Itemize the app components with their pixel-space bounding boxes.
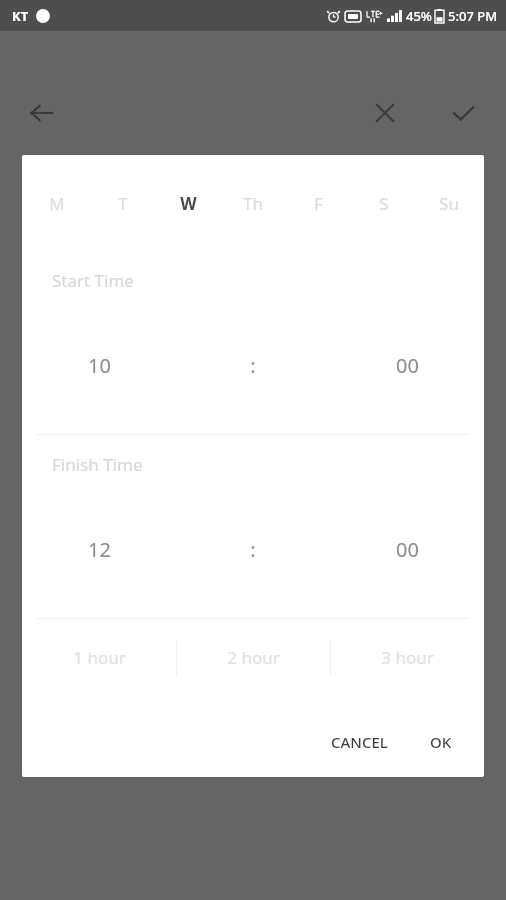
button[interactable]: 12 <box>22 521 176 577</box>
staticText: 10 <box>88 352 111 379</box>
staticText: T <box>118 192 128 215</box>
button[interactable]: Back <box>18 89 66 137</box>
staticText: Th <box>243 192 263 215</box>
button[interactable]: 3 hour <box>331 619 484 695</box>
button[interactable]: 1 hour <box>22 619 176 695</box>
staticText: : <box>250 352 256 379</box>
staticText: S <box>379 192 389 215</box>
button[interactable]: OK <box>416 718 466 766</box>
staticText: 00 <box>396 536 419 563</box>
staticText: 5:07 PM <box>448 7 498 25</box>
staticText: OK <box>430 732 452 752</box>
button[interactable]: S <box>354 177 414 229</box>
button[interactable]: 2 hour <box>177 619 330 695</box>
staticText: W <box>180 192 197 215</box>
button[interactable]: Close <box>361 89 409 137</box>
button[interactable]: Su <box>419 177 479 229</box>
button[interactable]: CANCEL <box>317 718 402 766</box>
staticText: 2 hour <box>227 646 280 669</box>
staticText: 1 hour <box>73 646 126 669</box>
button[interactable]: 00 <box>330 521 484 577</box>
staticText: Su <box>439 192 459 215</box>
staticText: Start Time <box>52 269 134 292</box>
staticText: 3 hour <box>381 646 434 669</box>
button[interactable]: Th <box>223 177 283 229</box>
button[interactable]: W <box>158 177 218 229</box>
staticText: : <box>250 536 256 563</box>
staticText: 00 <box>396 352 419 379</box>
staticText: 45% <box>406 7 432 25</box>
button[interactable]: T <box>93 177 153 229</box>
staticText: Finish Time <box>52 453 143 476</box>
button[interactable]: 10 <box>22 337 176 393</box>
staticText: 12 <box>88 536 111 563</box>
button[interactable]: F <box>288 177 348 229</box>
button[interactable]: M <box>27 177 87 229</box>
staticText: CANCEL <box>331 732 388 752</box>
staticText: F <box>314 192 323 215</box>
button[interactable]: Done <box>439 89 487 137</box>
staticText: M <box>49 192 65 215</box>
button[interactable]: 00 <box>330 337 484 393</box>
staticText: KT <box>12 7 29 25</box>
